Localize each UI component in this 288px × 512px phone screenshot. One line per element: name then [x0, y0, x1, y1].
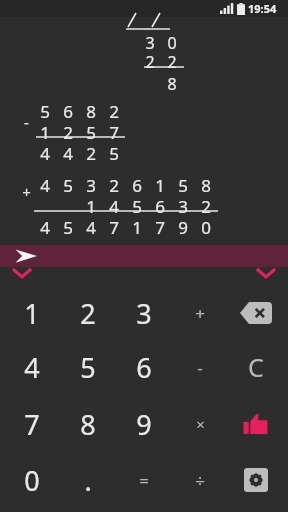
staticText: 3 — [136, 295, 152, 332]
staticText: 1 — [24, 295, 40, 332]
button[interactable]: 9 — [116, 397, 172, 451]
staticText: 5 — [132, 195, 142, 218]
staticText: 7 — [109, 216, 119, 239]
button[interactable]: 8 — [60, 397, 116, 451]
button[interactable]: Expand right — [254, 266, 278, 280]
staticText: 1 — [40, 121, 50, 144]
staticText: 2 — [109, 100, 119, 123]
staticText: + — [195, 302, 205, 325]
button[interactable]: C — [228, 340, 284, 394]
staticText: - — [24, 112, 29, 132]
button[interactable]: × — [172, 397, 228, 451]
staticText: 6 — [155, 195, 165, 218]
staticText: 2 — [201, 195, 211, 218]
staticText: 4 — [109, 195, 119, 218]
staticText: 1 — [86, 195, 96, 218]
staticText: 5 — [40, 100, 50, 123]
staticText: 3 — [178, 195, 188, 218]
button[interactable]: 3 — [116, 286, 172, 340]
button[interactable]: 4 — [4, 340, 60, 394]
button[interactable]: = — [116, 453, 172, 507]
staticText: 8 — [80, 406, 96, 443]
staticText: 8 — [167, 73, 177, 95]
staticText: 5 — [178, 174, 188, 197]
button[interactable]: Settings — [228, 453, 284, 507]
staticText: 5 — [63, 174, 73, 197]
staticText: ÷ — [195, 469, 205, 492]
staticText: 1 — [155, 174, 165, 197]
button[interactable]: Confirm — [228, 397, 284, 451]
staticText: C — [248, 350, 264, 384]
button[interactable]: 0 — [4, 453, 60, 507]
staticText: 2 — [109, 174, 119, 197]
staticText: 0 — [167, 32, 177, 54]
staticText: 6 — [63, 100, 73, 123]
staticText: 4 — [40, 216, 50, 239]
staticText: 4 — [63, 142, 73, 165]
staticText: 4 — [86, 216, 96, 239]
button[interactable]: Send — [14, 246, 38, 266]
staticText: 2 — [167, 51, 177, 73]
staticText: 19:54 — [248, 1, 277, 16]
button[interactable] — [0, 245, 288, 267]
staticText: 5 — [86, 121, 96, 144]
button[interactable]: 7 — [4, 397, 60, 451]
staticText: 0 — [201, 216, 211, 239]
staticText: 6 — [132, 174, 142, 197]
staticText: 9 — [178, 216, 188, 239]
staticText: 2 — [80, 295, 96, 332]
staticText: 2 — [86, 142, 96, 165]
button[interactable]: Expand left — [10, 266, 34, 280]
staticText: 3 — [86, 174, 96, 197]
staticText: 2 — [63, 121, 73, 144]
button[interactable]: 6 — [116, 340, 172, 394]
button[interactable]: Backspace — [228, 286, 284, 340]
staticText: 3 — [145, 32, 155, 54]
staticText: 4 — [40, 142, 50, 165]
staticText: 9 — [136, 406, 152, 443]
staticText: = — [139, 469, 149, 492]
staticText: 4 — [24, 349, 40, 386]
staticText: 1 — [132, 216, 142, 239]
staticText: 5 — [109, 142, 119, 165]
button[interactable]: - — [172, 340, 228, 394]
staticText: - — [197, 356, 203, 379]
staticText: 7 — [109, 121, 119, 144]
staticText: 6 — [136, 349, 152, 386]
staticText: 5 — [63, 216, 73, 239]
staticText: 8 — [86, 100, 96, 123]
staticText: 4 — [40, 174, 50, 197]
staticText: 7 — [24, 406, 40, 443]
staticText: . — [84, 462, 92, 499]
staticText: 8 — [201, 174, 211, 197]
button[interactable]: 1 — [4, 286, 60, 340]
button[interactable]: . — [60, 453, 116, 507]
staticText: 2 — [145, 51, 155, 73]
button[interactable]: ÷ — [172, 453, 228, 507]
button[interactable]: 5 — [60, 340, 116, 394]
staticText: 5 — [80, 349, 96, 386]
staticText: × — [196, 414, 205, 434]
button[interactable]: + — [172, 286, 228, 340]
staticText: 7 — [155, 216, 165, 239]
button[interactable]: 2 — [60, 286, 116, 340]
staticText: + — [22, 182, 31, 202]
staticText: 0 — [24, 462, 40, 499]
